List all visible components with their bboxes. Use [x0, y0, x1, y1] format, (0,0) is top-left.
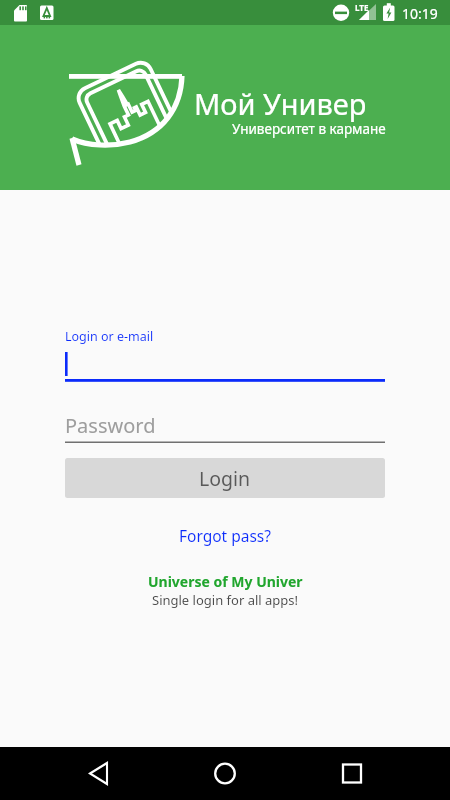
button[interactable]: Forgot pass? — [171, 521, 280, 550]
button[interactable] — [65, 348, 385, 384]
staticText: Университет в кармане — [232, 120, 386, 138]
staticText: Single login for all apps! — [152, 591, 299, 609]
staticText: Universe of My Univer — [148, 572, 303, 591]
staticText: LTE — [355, 2, 369, 13]
staticText: Forgot pass? — [179, 525, 272, 546]
staticText: LTE — [355, 2, 369, 13]
button[interactable]: Back — [60, 747, 450, 800]
staticText: Login or e-mail — [65, 328, 154, 345]
staticText: 10:19 — [402, 4, 438, 23]
staticText: Мой Универ — [194, 84, 367, 123]
staticText: 10:19 — [402, 4, 438, 23]
staticText: Password — [65, 412, 156, 439]
staticText: Login — [199, 465, 251, 492]
button[interactable]: Login — [65, 458, 385, 498]
button[interactable]: Password — [65, 412, 385, 443]
